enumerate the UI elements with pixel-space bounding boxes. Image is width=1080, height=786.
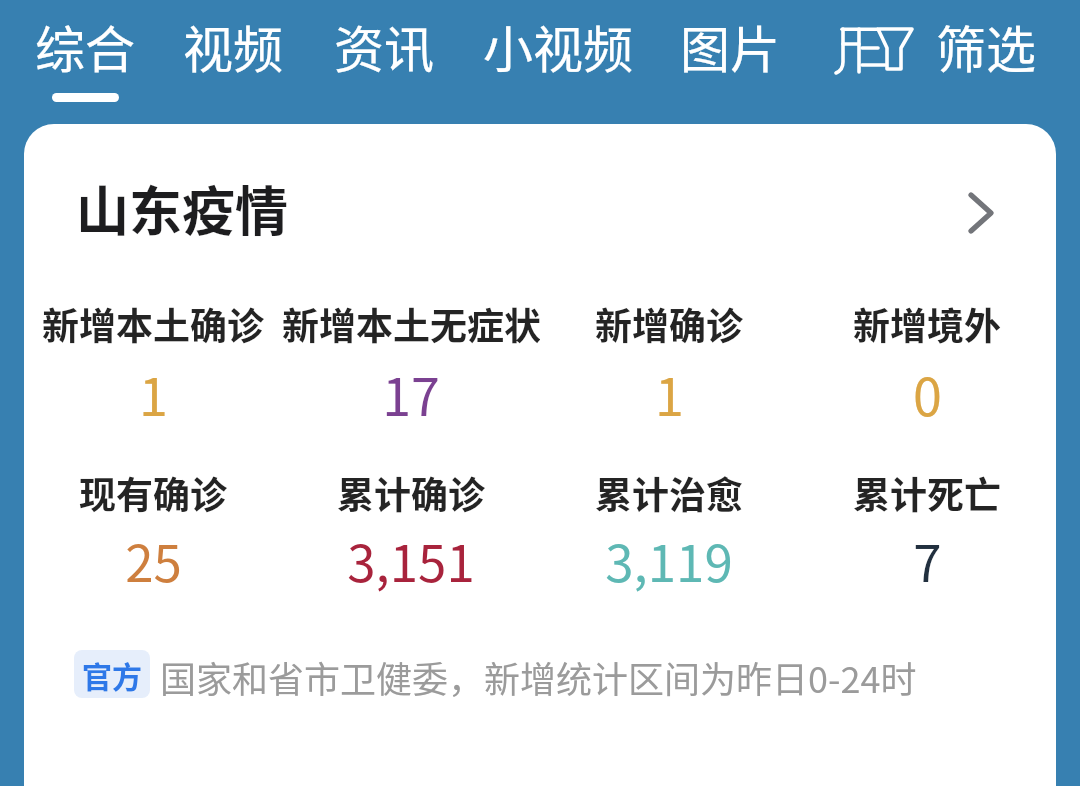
staticText: 1 [139, 356, 168, 426]
staticText: 资讯 [334, 10, 434, 82]
staticText: 7 [913, 523, 942, 593]
button[interactable]: 累计死亡 [798, 466, 1056, 516]
button[interactable]: 1 [24, 356, 282, 426]
button[interactable]: 17 [282, 356, 540, 426]
staticText: 3,151 [347, 523, 475, 593]
button[interactable]: 25 [24, 523, 282, 593]
staticText: 新增境外 [853, 297, 1001, 347]
button[interactable]: 山东疫情 [24, 124, 1056, 786]
button[interactable]: 0 [798, 356, 1056, 426]
staticText: 国家和省市卫健委，新增统计区间为昨日0-24时 [160, 651, 917, 703]
staticText: 累计确诊 [337, 466, 485, 516]
button[interactable]: 筛选 [830, 0, 1048, 96]
button[interactable]: 图片 [674, 0, 786, 104]
button[interactable]: 7 [798, 523, 1056, 593]
staticText: 官方 [82, 653, 142, 696]
button[interactable]: 新增确诊 [540, 297, 798, 347]
button[interactable]: 累计确诊 [282, 466, 540, 516]
staticText: 17 [382, 356, 440, 426]
staticText: 新增本土确诊 [42, 297, 264, 347]
button[interactable]: 1 [540, 356, 798, 426]
button[interactable]: 3,151 [282, 523, 540, 593]
staticText: 现有确诊 [79, 466, 227, 516]
button[interactable]: 新增本土确诊 [24, 297, 282, 347]
button[interactable]: 现有确诊 [24, 466, 282, 516]
staticText: 新增本土无症状 [282, 297, 540, 347]
staticText: 新增确诊 [595, 297, 743, 347]
staticText: 3,119 [605, 523, 733, 593]
staticText: 累计治愈 [595, 466, 743, 516]
staticText: 25 [125, 523, 182, 593]
button[interactable]: 综合 [29, 0, 141, 104]
button[interactable]: 新增境外 [798, 297, 1056, 347]
staticText: 图片 [680, 10, 780, 82]
staticText: 视频 [183, 10, 283, 82]
staticText: 综合 [35, 10, 135, 82]
staticText: 山东疫情 [76, 170, 288, 247]
button[interactable]: 3,119 [540, 523, 798, 593]
button[interactable]: 资讯 [328, 0, 440, 104]
button[interactable]: 查看详情 [912, 162, 1044, 262]
staticText: 累计死亡 [853, 466, 1001, 516]
button[interactable]: 新增本土无症状 [282, 297, 540, 347]
button[interactable]: 视频 [177, 0, 289, 104]
staticText: 小视频 [483, 10, 633, 82]
staticText: 1 [655, 356, 684, 426]
button[interactable]: 官方 [74, 650, 150, 698]
staticText: 筛选 [936, 10, 1036, 82]
button[interactable]: 小视频 [478, 0, 638, 104]
staticText: 0 [913, 356, 942, 426]
button[interactable]: 累计治愈 [540, 466, 798, 516]
